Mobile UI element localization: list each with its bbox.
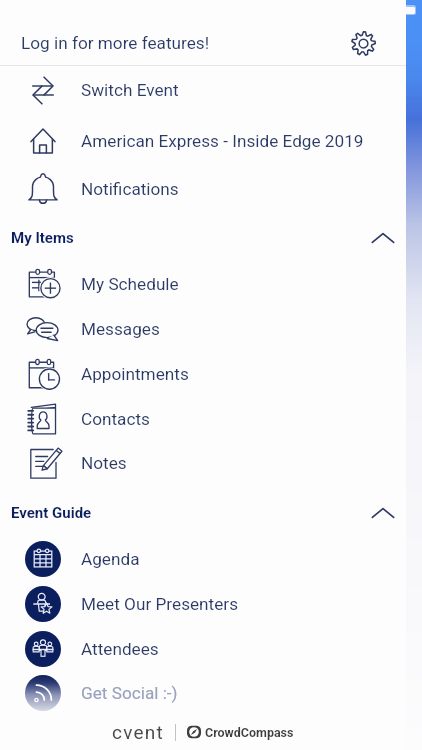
staticText: Meet Our Presenters (81, 594, 239, 614)
staticText: cvent (112, 721, 164, 743)
staticText: CrowdCompass (205, 725, 294, 740)
staticText: Messages (81, 319, 160, 339)
button[interactable]: Log in for more features! (0, 21, 406, 65)
staticText: Log in for more features! (21, 33, 210, 53)
button[interactable]: Agenda (0, 537, 406, 581)
staticText: My Items (11, 229, 74, 247)
staticText: Agenda (81, 549, 140, 569)
button[interactable]: Attendees (0, 627, 406, 671)
button[interactable]: Meet Our Presenters (0, 582, 406, 626)
button[interactable]: Switch Event (0, 68, 406, 112)
staticText: Appointments (81, 364, 189, 384)
staticText: Contacts (81, 409, 150, 429)
button[interactable]: Notes (0, 441, 406, 485)
button[interactable]: Appointments (0, 352, 406, 396)
button[interactable]: Event Guide (0, 493, 406, 533)
staticText: My Schedule (81, 274, 179, 294)
staticText: Notes (81, 453, 127, 473)
staticText: Switch Event (81, 80, 179, 100)
button[interactable]: American Express - Inside Edge 2019 (0, 119, 406, 163)
staticText: Notifications (81, 179, 179, 199)
button[interactable]: Notifications (0, 167, 406, 211)
staticText: Attendees (81, 639, 159, 659)
button[interactable]: My Items (0, 218, 406, 258)
staticText: Get Social :-) (81, 683, 178, 703)
button[interactable]: Get Social :-) (0, 671, 406, 715)
button[interactable]: Settings (346, 26, 380, 60)
staticText: Event Guide (11, 504, 92, 522)
button[interactable]: Contacts (0, 397, 406, 441)
button[interactable]: Messages (0, 307, 406, 351)
staticText: American Express - Inside Edge 2019 (81, 131, 364, 151)
button[interactable]: My Schedule (0, 262, 406, 306)
